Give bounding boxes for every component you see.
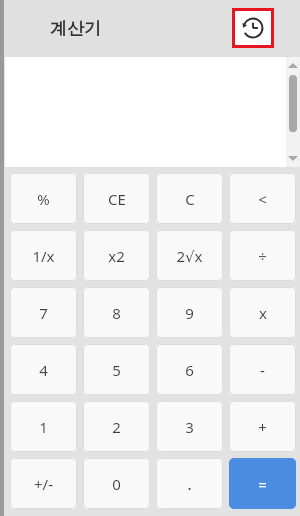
button[interactable]: 6 — [156, 344, 223, 395]
staticText: . — [187, 472, 192, 495]
staticText: 9 — [185, 303, 194, 323]
button[interactable]: 8 — [83, 287, 150, 338]
button[interactable]: 7 — [10, 287, 77, 338]
button[interactable]: 4 — [10, 344, 77, 395]
button[interactable]: 5 — [83, 344, 150, 395]
staticText: 5 — [112, 360, 121, 380]
staticText: % — [37, 189, 50, 209]
staticText: C — [185, 189, 195, 209]
staticText: 3 — [185, 417, 194, 437]
staticText: x — [259, 303, 267, 323]
button[interactable]: CE — [83, 173, 150, 224]
button[interactable]: +/- — [10, 458, 77, 509]
staticText: 2√x — [176, 246, 203, 266]
button[interactable]: History — [235, 11, 271, 45]
staticText: 4 — [39, 360, 48, 380]
button[interactable]: ÷ — [229, 230, 296, 281]
button[interactable]: < — [229, 173, 296, 224]
button[interactable]: + — [229, 401, 296, 452]
staticText: 0 — [112, 474, 121, 494]
staticText: ÷ — [258, 246, 267, 266]
staticText: < — [258, 189, 267, 209]
staticText: 7 — [39, 303, 48, 323]
button[interactable]: = — [229, 458, 296, 509]
button[interactable]: 0 — [83, 458, 150, 509]
staticText: +/- — [34, 474, 53, 494]
button[interactable]: x — [229, 287, 296, 338]
staticText: CE — [108, 189, 126, 209]
button[interactable]: 1 — [10, 401, 77, 452]
button[interactable]: x2 — [83, 230, 150, 281]
button[interactable]: 9 — [156, 287, 223, 338]
button[interactable]: 2√x — [156, 230, 223, 281]
button[interactable]: 3 — [156, 401, 223, 452]
button[interactable]: - — [229, 344, 296, 395]
staticText: 계산기 — [50, 18, 101, 39]
button[interactable]: . — [156, 458, 223, 509]
staticText: 1/x — [32, 246, 55, 266]
staticText: 8 — [112, 303, 121, 323]
staticText: x2 — [108, 246, 125, 266]
button[interactable]: % — [10, 173, 77, 224]
staticText: 6 — [185, 360, 194, 380]
staticText: = — [258, 474, 267, 494]
staticText: 2 — [112, 417, 121, 437]
button[interactable]: 2 — [83, 401, 150, 452]
button[interactable]: 1/x — [10, 230, 77, 281]
button[interactable]: C — [156, 173, 223, 224]
staticText: 1 — [39, 417, 48, 437]
staticText: + — [258, 417, 267, 437]
staticText: - — [260, 360, 265, 380]
